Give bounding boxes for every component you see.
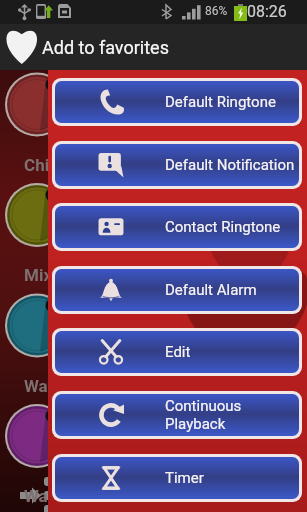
staticText: Default Alarm bbox=[165, 281, 257, 299]
staticText: Edit bbox=[165, 343, 191, 361]
staticText: 86% bbox=[205, 4, 228, 18]
staticText: Chicken bbox=[24, 155, 86, 175]
button[interactable]: Add to favorites bbox=[0, 24, 307, 70]
staticText: Watch bbox=[24, 486, 72, 506]
staticText: 08:26 bbox=[247, 2, 287, 21]
button[interactable]: Contact Ringtone bbox=[55, 206, 299, 248]
staticText: Water bbox=[24, 376, 69, 396]
staticText: Mixed bbox=[24, 265, 71, 285]
button[interactable]: Default Notification bbox=[55, 144, 299, 186]
button[interactable]: Default Alarm bbox=[55, 269, 299, 311]
staticText: Add to favorites bbox=[42, 37, 169, 58]
staticText: Continuous Playback bbox=[165, 397, 242, 433]
staticText: Default Notification bbox=[165, 156, 295, 174]
staticText: Timer bbox=[165, 469, 204, 487]
button[interactable]: Timer bbox=[55, 457, 299, 499]
button[interactable]: Edit bbox=[55, 331, 299, 373]
staticText: Contact Ringtone bbox=[165, 218, 281, 236]
button[interactable]: Continuous Playback bbox=[55, 394, 299, 436]
staticText: Default Ringtone bbox=[165, 93, 276, 111]
button[interactable]: Default Ringtone bbox=[55, 81, 299, 123]
